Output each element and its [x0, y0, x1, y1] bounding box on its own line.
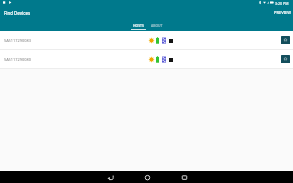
button[interactable]: ABOUT: [150, 21, 163, 31]
staticText: Find Devices: [4, 10, 31, 16]
staticText: SA5117290083: [4, 38, 31, 43]
button[interactable]: Connect to device: [281, 36, 290, 44]
staticText: HOSTS: [133, 23, 144, 28]
button[interactable]: Recent apps: [178, 171, 190, 183]
staticText: ABOUT: [151, 23, 163, 28]
staticText: PREVIEW: [274, 10, 292, 15]
button[interactable]: HOSTS: [131, 21, 146, 31]
button[interactable]: Back: [104, 171, 116, 183]
button[interactable]: SA5117290083: [0, 31, 293, 49]
button[interactable]: SA5117290080: [0, 50, 293, 68]
button[interactable]: Connect to device: [281, 55, 290, 63]
staticText: 3:20 PM: [275, 1, 289, 6]
staticText: SA5117290080: [4, 57, 31, 62]
button[interactable]: Home: [141, 171, 153, 183]
button[interactable]: PREVIEW: [272, 10, 293, 15]
